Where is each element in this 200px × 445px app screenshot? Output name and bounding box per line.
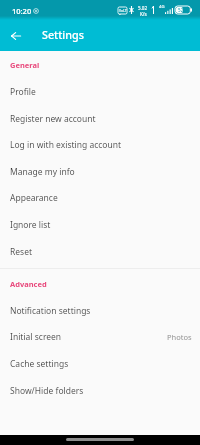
button[interactable]: Appearance	[0, 184, 200, 211]
button[interactable]: Manage my info	[0, 158, 200, 185]
button[interactable]: Home	[66, 438, 134, 441]
staticText: Log in with existing account	[10, 139, 122, 151]
staticText: Profile	[10, 86, 36, 98]
staticText: Photos	[167, 332, 192, 342]
staticText: Settings	[42, 28, 84, 43]
staticText: General	[10, 60, 40, 70]
staticText: VoLTE	[119, 8, 128, 15]
staticText: K/s	[140, 11, 147, 17]
staticText: Show/Hide folders	[10, 385, 84, 397]
button[interactable]: Initial screen	[0, 323, 200, 350]
button[interactable]: Cache settings	[0, 350, 200, 377]
button[interactable]: Profile	[0, 78, 200, 105]
staticText: 52	[178, 7, 184, 13]
staticText: Notification settings	[10, 305, 91, 317]
staticText: Cache settings	[10, 358, 69, 370]
staticText: Initial screen	[10, 331, 62, 343]
staticText: Advanced	[10, 279, 47, 289]
button[interactable]: Back	[0, 20, 32, 51]
staticText: 10:20	[12, 6, 32, 16]
button[interactable]: Notification settings	[0, 297, 200, 324]
staticText: Reset	[10, 246, 33, 258]
staticText: Register new account	[10, 113, 96, 125]
button[interactable]: Show/Hide folders	[0, 377, 200, 404]
staticText: Ignore list	[10, 219, 51, 231]
button[interactable]: Log in with existing account	[0, 131, 200, 158]
staticText: Manage my info	[10, 166, 75, 178]
staticText: 5.02	[138, 5, 148, 11]
button[interactable]: Register new account	[0, 105, 200, 132]
staticText: 4G	[159, 4, 165, 10]
button[interactable]: Reset	[0, 238, 200, 265]
button[interactable]: Ignore list	[0, 211, 200, 238]
staticText: Appearance	[10, 192, 58, 204]
